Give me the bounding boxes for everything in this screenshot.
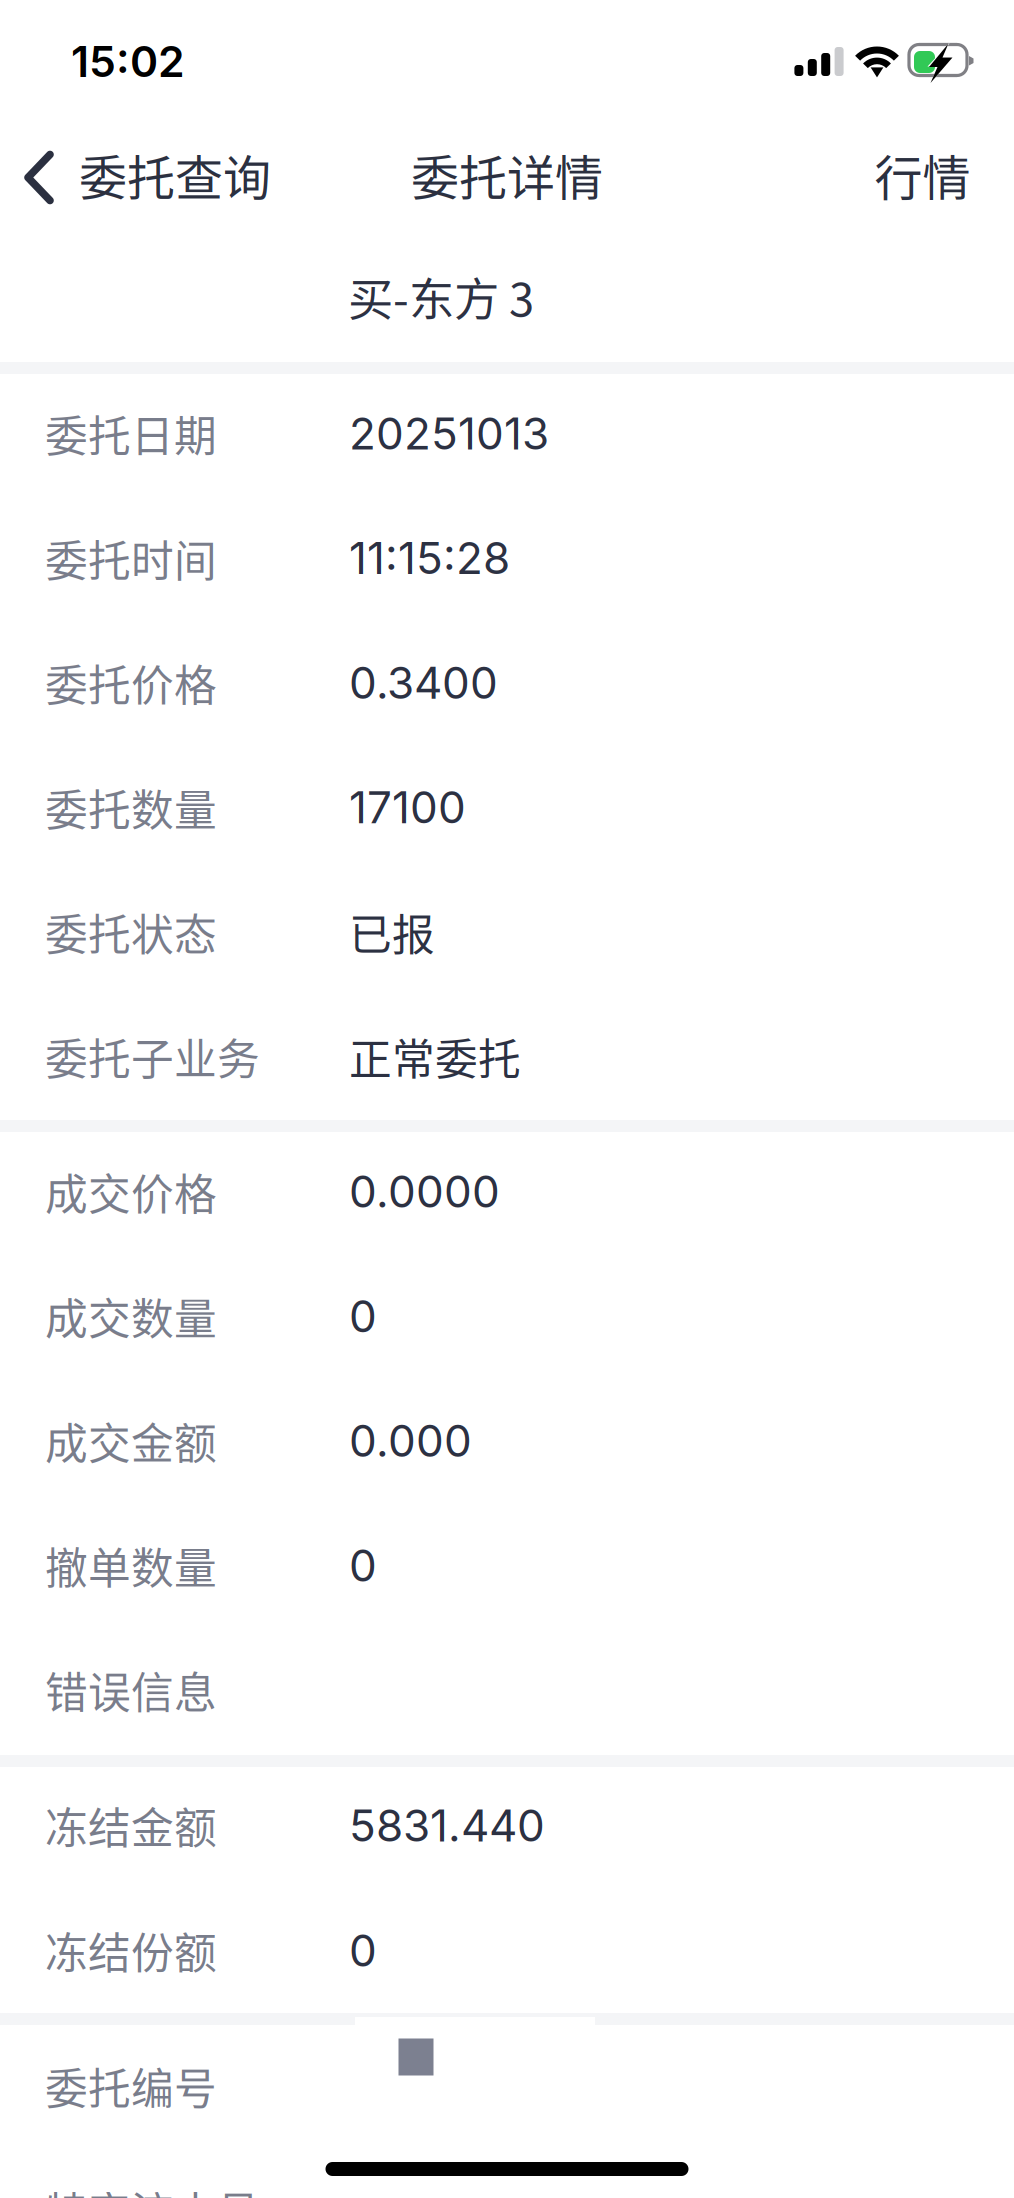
staticText: 委托查询 [79,140,271,209]
staticText: 委托编号 [45,2055,217,2117]
staticText: 5831.440 [349,1799,545,1852]
staticText: 0 [349,1290,377,1343]
staticText: 15:02 [71,36,185,87]
staticText: 委托详情 [411,140,603,209]
staticText: 20251013 [349,407,549,460]
staticText: 行情 [874,140,970,209]
staticText: 0.3400 [349,656,498,709]
staticText: 成交价格 [45,1161,217,1222]
staticText: 委托子业务 [45,1026,260,1087]
staticText: 委托状态 [45,901,217,963]
staticText: 0.000 [349,1414,472,1467]
staticText: 成交金额 [45,1410,217,1472]
staticText: 错误信息 [45,1659,217,1721]
staticText: 冻结份额 [45,1920,217,1981]
staticText: 委托日期 [45,403,217,464]
staticText: 成交数量 [45,1285,217,1347]
staticText: 0.0000 [349,1165,500,1218]
staticText: 委托价格 [45,652,217,714]
staticText: 17100 [349,781,466,834]
staticText: 冻结金额 [45,1795,217,1856]
staticText: 已报 [349,901,435,963]
staticText: 委托数量 [45,776,217,838]
staticText: 撤单数量 [45,1534,217,1596]
staticText: 0 [349,1539,377,1592]
staticText: 0 [349,1924,377,1977]
button[interactable]: 委托查询 [0,122,287,232]
staticText: 11:15:28 [349,531,510,585]
staticText: 正常委托 [349,1026,521,1087]
staticText: 委托时间 [45,527,217,589]
staticText: 买-东方 3 [348,264,534,329]
staticText: 特定流水号 [45,2179,260,2198]
button[interactable]: 行情 [836,120,1014,228]
